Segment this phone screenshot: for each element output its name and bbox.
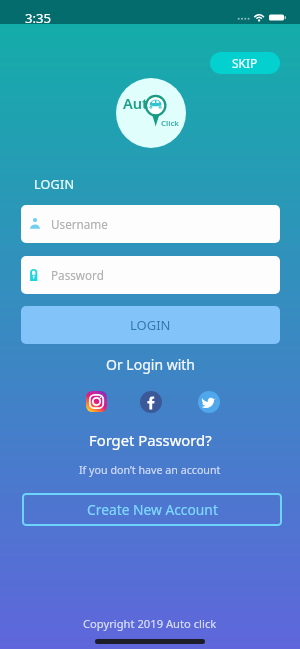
staticText: SKIP — [232, 55, 258, 71]
button[interactable]: Create New Account — [22, 493, 282, 526]
staticText: Copyright 2019 Auto click — [83, 616, 217, 631]
staticText: Forget Password? — [89, 430, 212, 450]
button[interactable]: Password — [21, 256, 280, 294]
button[interactable]: Sign in with Instagram — [86, 391, 107, 412]
button[interactable]: Username — [21, 205, 280, 243]
button[interactable]: Sign in with Facebook — [140, 391, 162, 413]
button[interactable]: Sign in with Twitter — [198, 391, 220, 413]
staticText: 3:35 — [25, 9, 52, 27]
staticText: Or Login with — [106, 355, 195, 374]
staticText: If you don’t have an account — [79, 463, 221, 478]
staticText: Aut — [123, 93, 149, 113]
button[interactable]: Forget Password? — [89, 430, 212, 450]
button[interactable]: LOGIN — [21, 306, 280, 344]
staticText: Username — [51, 216, 108, 232]
staticText: Click — [161, 118, 179, 129]
staticText: LOGIN — [34, 176, 75, 193]
staticText: Password — [51, 267, 104, 283]
staticText: Create New Account — [87, 500, 218, 519]
staticText: LOGIN — [130, 316, 171, 334]
button[interactable]: SKIP — [210, 52, 280, 74]
